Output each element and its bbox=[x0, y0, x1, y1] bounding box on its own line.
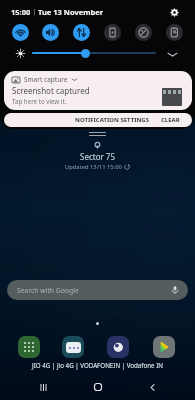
button[interactable]: Sound bbox=[42, 24, 59, 41]
staticText: 15:00 bbox=[11, 7, 31, 17]
staticText: Search with Google bbox=[17, 286, 79, 295]
staticText: Sector 75 bbox=[80, 151, 116, 162]
staticText: Tap here to view it. bbox=[12, 97, 67, 105]
button[interactable]: Brightness bbox=[32, 52, 156, 54]
button[interactable]: App bbox=[107, 336, 129, 358]
button[interactable]: NOTIFICATION SETTINGS bbox=[73, 114, 152, 126]
button[interactable]: Settings bbox=[167, 5, 181, 19]
button[interactable]: Home bbox=[86, 375, 110, 399]
staticText: Smart capture bbox=[24, 75, 68, 84]
button[interactable]: Auto rotate bbox=[104, 24, 121, 41]
staticText: JIO 4G | Jio 4G | VODAFONEIN | Vodafone … bbox=[32, 361, 163, 369]
staticText: CLEAR bbox=[161, 116, 180, 124]
button[interactable]: Smart capture bbox=[4, 71, 192, 110]
button[interactable]: Bluetooth bbox=[135, 24, 152, 41]
button[interactable]: App bbox=[18, 336, 40, 358]
button[interactable]: Back bbox=[140, 375, 164, 399]
button[interactable]: Recents bbox=[31, 375, 55, 399]
button[interactable]: Wi-Fi bbox=[12, 24, 29, 41]
button[interactable]: Sector 75 bbox=[55, 141, 140, 172]
button[interactable]: Mobile data bbox=[73, 24, 90, 41]
staticText: NOTIFICATION SETTINGS bbox=[75, 116, 150, 124]
staticText: Screenshot captured bbox=[12, 85, 90, 96]
button[interactable]: NFC bbox=[166, 24, 183, 41]
button[interactable]: Expand quick settings bbox=[165, 47, 179, 61]
staticText: Updated 13/11 15:00 bbox=[65, 163, 122, 171]
staticText: Tue 13 November bbox=[38, 7, 104, 17]
button[interactable]: Search with Google bbox=[7, 280, 188, 300]
button[interactable]: CLEAR bbox=[159, 114, 182, 126]
button[interactable]: App bbox=[153, 336, 175, 358]
button[interactable]: App bbox=[62, 336, 84, 358]
